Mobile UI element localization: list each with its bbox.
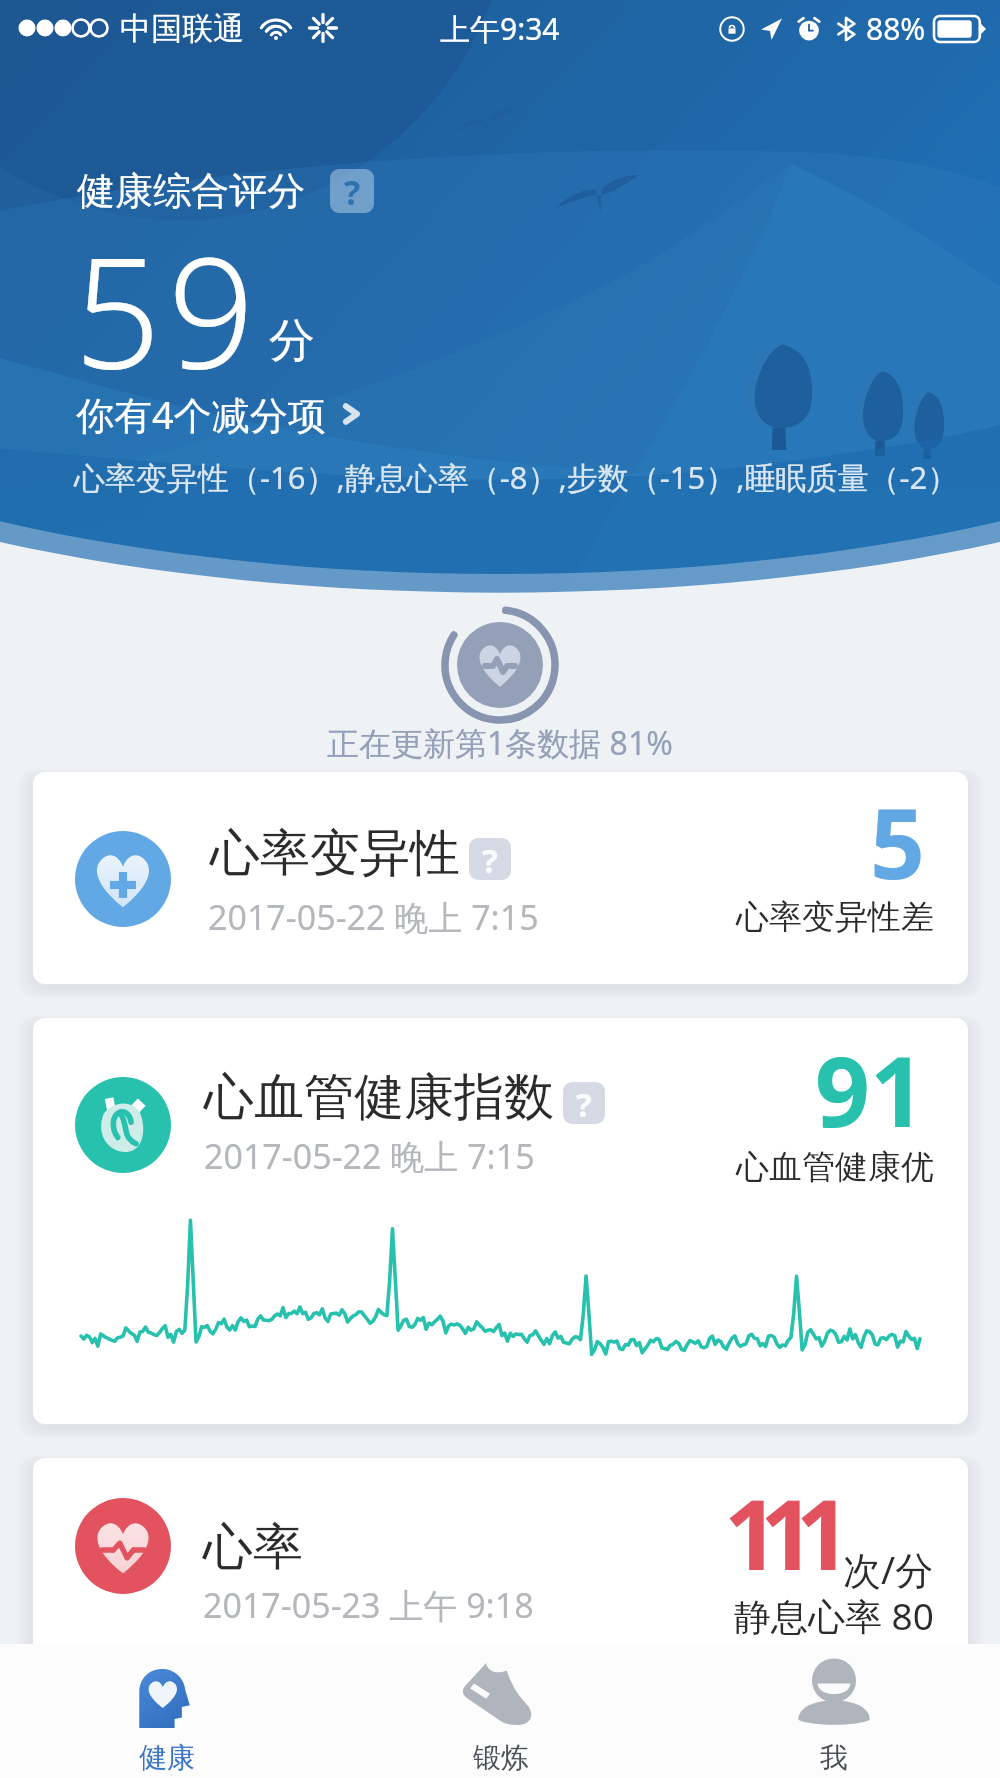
staticText: 2017-05-22 晚上 7:15 <box>208 894 539 940</box>
staticText: 次/分 <box>843 1543 934 1595</box>
button[interactable]: 帮助 <box>330 169 374 213</box>
staticText: 88% <box>866 8 926 49</box>
staticText: 2017-05-22 晚上 7:15 <box>204 1133 535 1179</box>
staticText: 心率变异性差 <box>736 896 934 938</box>
button[interactable]: 锻炼 <box>334 1644 667 1778</box>
staticText: 2017-05-23 上午 9:18 <box>203 1582 534 1628</box>
staticText: 锻炼 <box>473 1740 529 1775</box>
button[interactable]: 心率 <box>33 1458 968 1698</box>
button[interactable]: 帮助 <box>469 838 511 880</box>
staticText: 健康综合评分 <box>77 167 305 215</box>
staticText: 111 <box>724 1467 832 1598</box>
staticText: 我 <box>820 1740 848 1775</box>
staticText: 心率变异性 <box>210 822 460 885</box>
button[interactable]: 心率变异性 <box>33 772 968 984</box>
staticText: 分 <box>269 312 315 370</box>
staticText: 心率变异性（-16）,静息心率（-8）,步数（-15）,睡眠质量（-2） <box>74 456 959 498</box>
button[interactable]: 健康 <box>0 1644 334 1778</box>
staticText: 心血管健康指数 <box>204 1066 554 1129</box>
button[interactable]: 帮助 <box>563 1082 605 1124</box>
staticText: 中国联通 <box>120 9 244 48</box>
staticText: 你有4个减分项 <box>76 388 326 440</box>
button[interactable]: 心血管健康指数 <box>33 1018 968 1424</box>
staticText: 心血管健康优 <box>736 1146 934 1188</box>
staticText: 91 <box>815 1024 925 1155</box>
staticText: 上午9:34 <box>440 8 560 49</box>
staticText: 5 <box>870 776 925 907</box>
staticText: ? <box>576 1082 592 1124</box>
staticText: 健康 <box>139 1740 195 1775</box>
staticText: ? <box>344 169 361 213</box>
button[interactable]: 我 <box>667 1644 1000 1778</box>
button[interactable]: 你有4个减分项 <box>76 388 366 440</box>
staticText: 59 <box>74 206 262 413</box>
staticText: 正在更新第1条数据 81% <box>327 721 673 765</box>
staticText: 心率 <box>203 1516 303 1579</box>
staticText: 静息心率 80 <box>734 1590 934 1641</box>
staticText: ? <box>482 838 498 880</box>
